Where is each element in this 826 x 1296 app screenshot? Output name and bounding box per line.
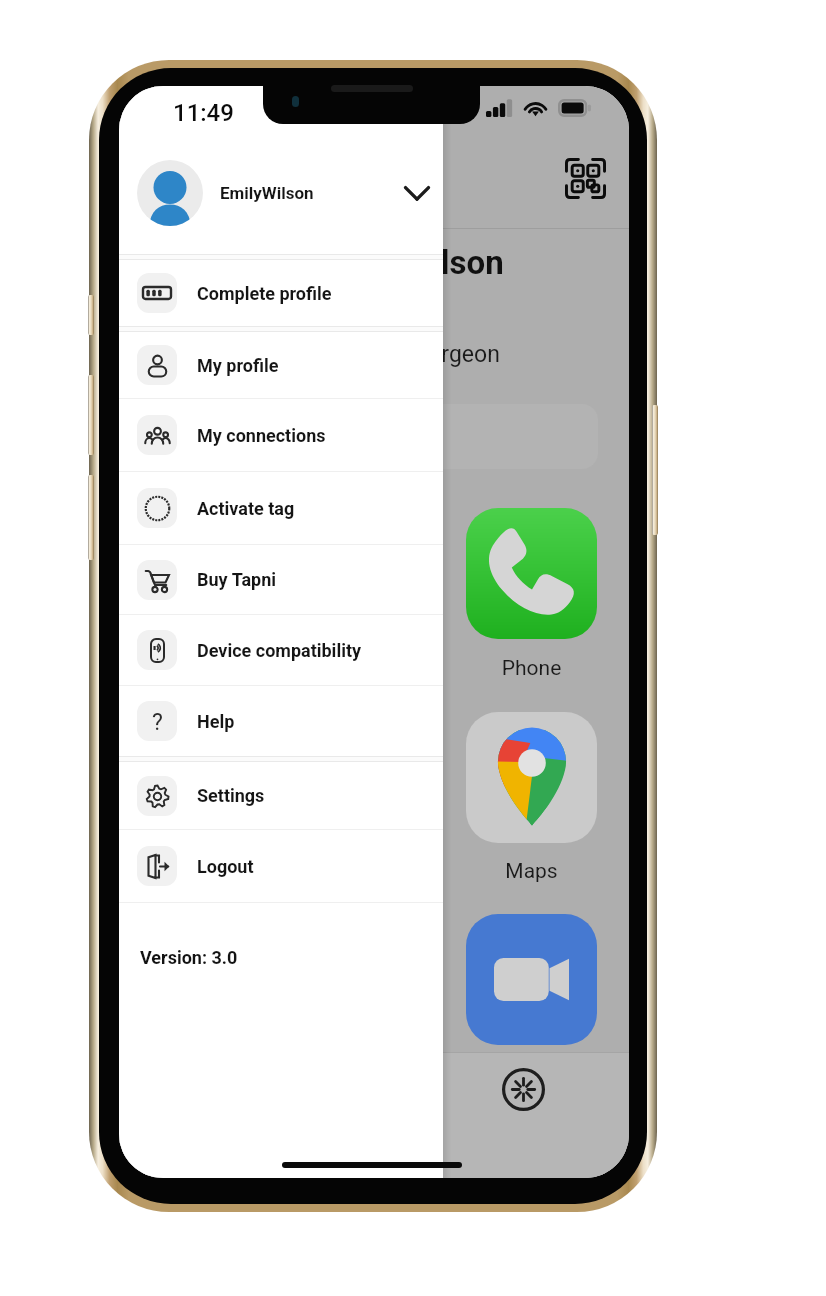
- staticText: Complete profile: [197, 283, 332, 304]
- staticText: Device compatibility: [197, 640, 362, 661]
- button[interactable]: Device compatibility: [119, 615, 443, 685]
- button[interactable]: Settings: [119, 762, 443, 829]
- staticText: EmilyWilson: [322, 243, 504, 282]
- button[interactable]: Complete profile: [119, 260, 443, 326]
- staticText: Logout: [197, 856, 254, 877]
- button[interactable]: Phone app: [466, 508, 597, 639]
- button[interactable]: My profile: [119, 332, 443, 398]
- button[interactable]: Zoom app: [466, 914, 597, 1045]
- staticText: Buy Tapni: [197, 569, 277, 590]
- button[interactable]: Activate tag: [119, 472, 443, 544]
- staticText: Version: 3.0: [140, 947, 238, 968]
- button[interactable]: Scan QR code: [560, 153, 610, 203]
- button[interactable]: Loading: [502, 1068, 545, 1111]
- staticText: ?: [152, 709, 163, 734]
- staticText: Phone: [466, 656, 597, 681]
- button[interactable]: Logout: [119, 830, 443, 902]
- button[interactable]: ?: [119, 686, 443, 756]
- staticText: My profile: [197, 355, 279, 376]
- staticText: Settings: [197, 785, 265, 806]
- button[interactable]: EmilyWilson: [119, 148, 443, 237]
- button[interactable]: Buy Tapni: [119, 545, 443, 614]
- staticText: 11:49: [173, 99, 234, 127]
- staticText: My connections: [197, 425, 326, 446]
- button[interactable]: My connections: [119, 399, 443, 471]
- staticText: Surgeon: [415, 341, 500, 368]
- staticText: Activate tag: [197, 498, 295, 519]
- staticText: Maps: [466, 859, 597, 884]
- staticText: Help: [197, 711, 235, 732]
- staticText: EmilyWilson: [220, 183, 314, 203]
- button[interactable]: Maps app: [466, 712, 597, 843]
